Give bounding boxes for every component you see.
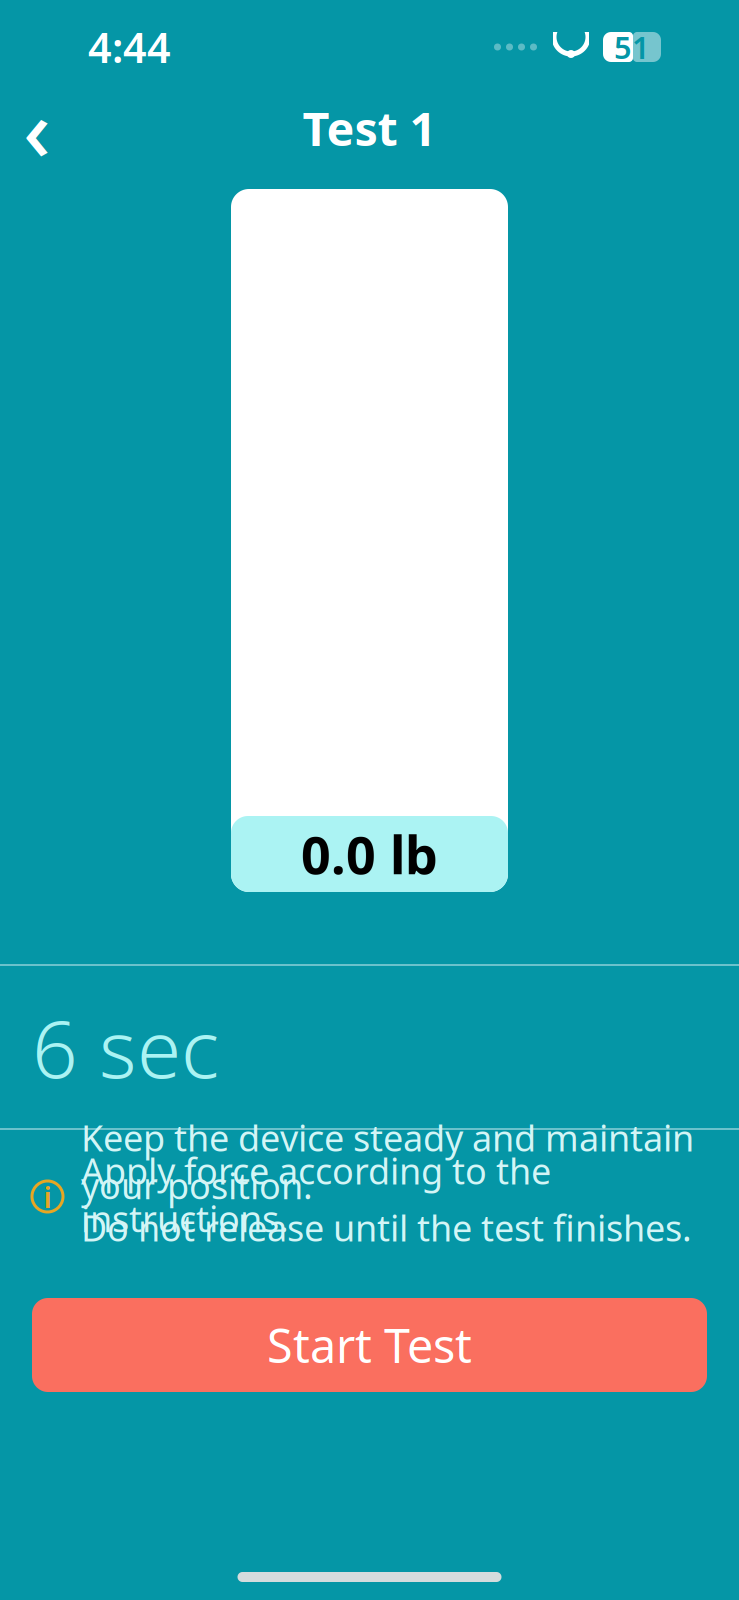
staticText: 0.0 lb — [301, 819, 438, 889]
staticText: 4:44 — [88, 20, 171, 74]
staticText: Start Test — [267, 1314, 472, 1376]
staticText: Do not release until the test finishes. — [81, 1204, 692, 1251]
staticText: i — [43, 1177, 51, 1216]
staticText: Test 1 — [302, 97, 436, 159]
staticText: Keep the device steady and maintain your… — [81, 1114, 694, 1209]
button[interactable]: Back — [6, 97, 68, 159]
staticText: 6 sec — [32, 994, 219, 1100]
staticText: 51 — [614, 27, 650, 67]
staticText: Apply force according to the instruction… — [81, 1147, 551, 1242]
button[interactable]: Start Test — [32, 1298, 707, 1392]
staticText: ‹ — [23, 71, 51, 185]
